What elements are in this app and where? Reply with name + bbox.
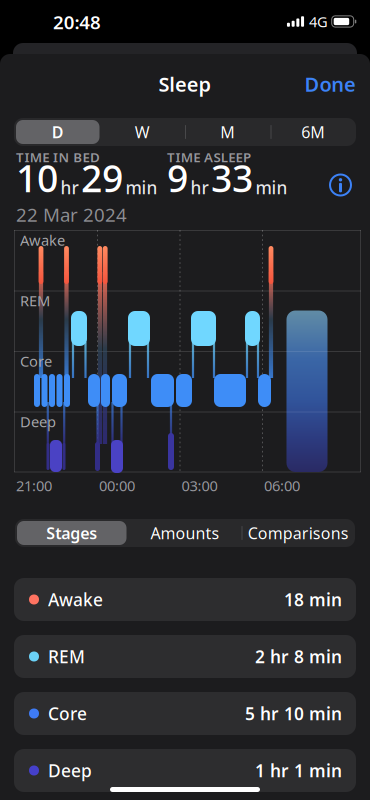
button[interactable]: 6M <box>271 118 356 146</box>
staticText: 6M <box>301 121 325 143</box>
staticText: TIME ASLEEP <box>167 148 251 166</box>
staticText: Awake <box>48 588 103 611</box>
staticText: D <box>52 121 64 143</box>
button[interactable]: Deep <box>14 749 356 792</box>
staticText: 10 <box>16 153 58 202</box>
staticText: 4G <box>309 12 328 31</box>
staticText: M <box>220 121 235 143</box>
staticText: 33 <box>211 153 253 202</box>
staticText: Deep <box>48 759 92 782</box>
staticText: 20:48 <box>53 10 101 34</box>
staticText: 29 <box>81 153 123 202</box>
button[interactable]: Stages <box>15 519 128 547</box>
button[interactable] <box>327 172 353 198</box>
staticText: TIME IN BED <box>16 148 100 166</box>
staticText: 21:00 <box>16 476 52 495</box>
staticText: 22 Mar 2024 <box>16 202 127 227</box>
button[interactable]: D <box>15 118 100 146</box>
staticText: REM <box>48 645 85 668</box>
button[interactable]: M <box>185 118 270 146</box>
button[interactable]: Amounts <box>128 519 241 547</box>
staticText: Sleep <box>158 71 212 97</box>
staticText: 18 min <box>284 588 342 611</box>
staticText: W <box>135 121 150 143</box>
staticText: hr <box>190 176 208 199</box>
staticText: 06:00 <box>264 476 300 495</box>
button[interactable]: Comparisons <box>242 519 355 547</box>
staticText: Awake <box>20 230 65 250</box>
button[interactable]: Core <box>14 692 356 735</box>
staticText: min <box>255 176 287 199</box>
staticText: Amounts <box>150 522 219 544</box>
staticText: 00:00 <box>99 476 135 495</box>
staticText: Done <box>305 71 356 97</box>
staticText: REM <box>20 291 50 310</box>
staticText: 2 hr 8 min <box>255 645 342 668</box>
staticText: 03:00 <box>181 476 217 495</box>
button[interactable]: Done <box>286 67 356 101</box>
staticText: Core <box>48 702 87 725</box>
button[interactable]: Awake <box>14 578 356 621</box>
button[interactable]: W <box>100 118 185 146</box>
staticText: 9 <box>167 153 188 202</box>
staticText: 1 hr 1 min <box>255 759 342 782</box>
staticText: Comparisons <box>248 522 349 544</box>
button[interactable]: REM <box>14 635 356 678</box>
staticText: hr <box>60 176 78 199</box>
staticText: Deep <box>20 412 56 431</box>
staticText: 5 hr 10 min <box>245 702 342 725</box>
staticText: min <box>125 176 157 199</box>
staticText: Stages <box>46 522 97 544</box>
staticText: Core <box>20 351 52 371</box>
